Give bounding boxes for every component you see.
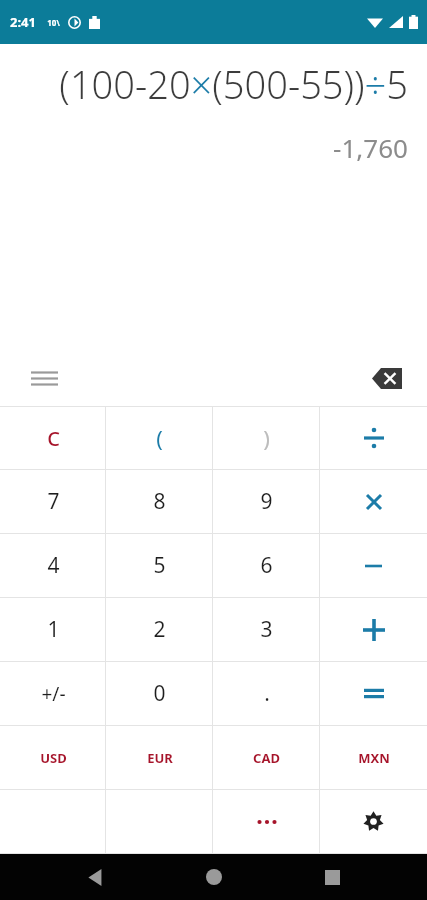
staticText: -1,760: [333, 130, 408, 165]
button[interactable]: (: [106, 407, 213, 469]
staticText: C: [47, 425, 60, 452]
staticText: ): [263, 423, 270, 453]
button[interactable]: Equals: [320, 662, 427, 725]
button[interactable]: ): [213, 407, 320, 469]
button[interactable]: 0: [106, 662, 213, 725]
staticText: +/-: [41, 681, 66, 707]
button[interactable]: C: [0, 407, 106, 469]
button[interactable]: MXN: [320, 726, 427, 789]
button[interactable]: 6: [213, 534, 320, 597]
staticText: USD: [40, 749, 67, 767]
staticText: 7: [47, 487, 60, 516]
button[interactable]: 4: [0, 534, 106, 597]
button[interactable]: EUR: [106, 726, 213, 789]
staticText: 0: [153, 679, 166, 708]
staticText: 2:41: [10, 13, 36, 31]
button[interactable]: 1: [0, 598, 106, 661]
button[interactable]: Settings: [320, 790, 427, 853]
staticText: EUR: [147, 749, 173, 767]
staticText: (100-20×(500-55))÷5: [59, 58, 408, 110]
button[interactable]: CAD: [213, 726, 320, 789]
button[interactable]: Menu: [20, 354, 68, 402]
staticText: 2: [153, 615, 166, 644]
staticText: 8: [153, 487, 166, 516]
staticText: 5: [153, 551, 166, 580]
button[interactable]: 8: [106, 470, 213, 533]
button[interactable]: Divide: [320, 407, 427, 469]
button[interactable]: Multiply: [320, 470, 427, 533]
staticText: .: [264, 679, 270, 708]
button[interactable]: .: [213, 662, 320, 725]
staticText: 9: [260, 487, 273, 516]
button[interactable]: 2: [106, 598, 213, 661]
button[interactable]: Add: [320, 598, 427, 661]
button[interactable]: 3: [213, 598, 320, 661]
staticText: 4: [47, 551, 60, 580]
staticText: (: [156, 423, 163, 453]
button[interactable]: Recents: [308, 854, 356, 900]
staticText: 6: [260, 551, 273, 580]
staticText: MXN: [358, 749, 390, 767]
button[interactable]: Home: [190, 854, 238, 900]
button[interactable]: +/-: [0, 662, 106, 725]
staticText: 3: [260, 615, 273, 644]
button[interactable]: Backspace: [363, 354, 411, 402]
staticText: CAD: [253, 749, 280, 767]
staticText: 10\: [47, 17, 60, 28]
button[interactable]: 5: [106, 534, 213, 597]
button[interactable]: 9: [213, 470, 320, 533]
button[interactable]: Back: [71, 854, 119, 900]
button[interactable]: Subtract: [320, 534, 427, 597]
staticText: 1: [47, 615, 60, 644]
button[interactable]: USD: [0, 726, 106, 789]
button[interactable]: 7: [0, 470, 106, 533]
button[interactable]: More: [213, 790, 320, 853]
